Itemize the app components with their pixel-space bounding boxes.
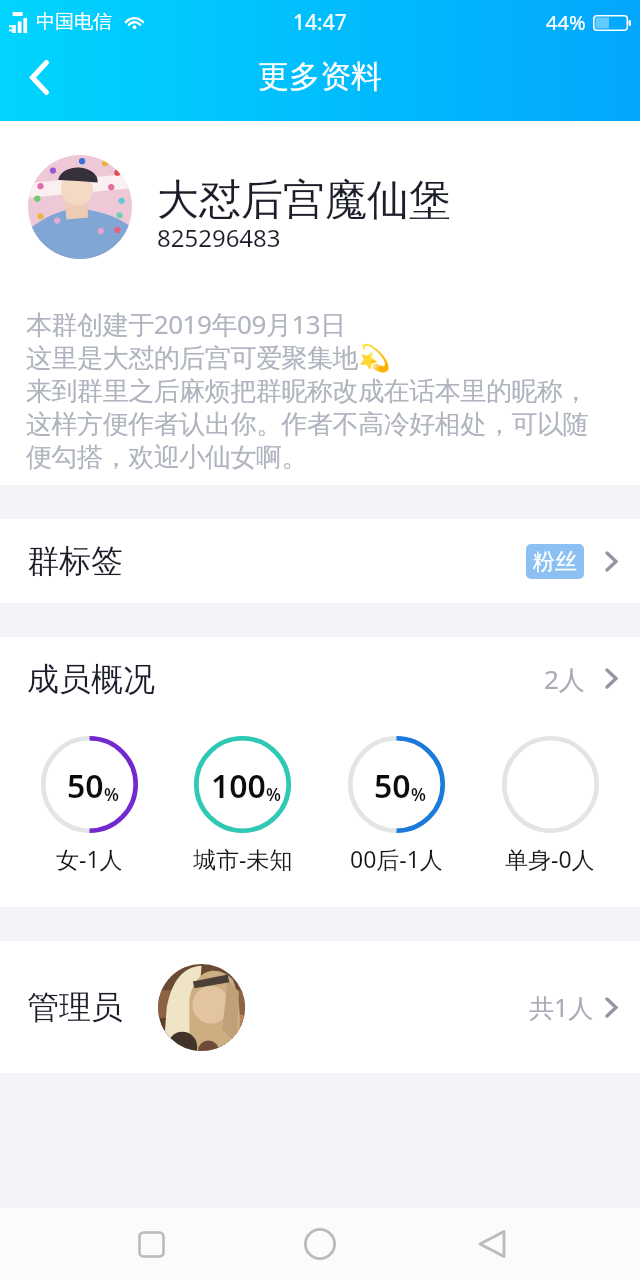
- staticText: 粉丝: [533, 548, 577, 576]
- staticText: %: [104, 783, 119, 806]
- button[interactable]: 群标签: [0, 519, 640, 603]
- staticText: 00后-1人: [350, 843, 443, 874]
- staticText: 女-1人: [56, 843, 123, 874]
- staticText: 825296483: [157, 221, 281, 254]
- staticText: 便勾搭，欢迎小仙女啊。: [26, 441, 308, 474]
- button[interactable]: 成员概况: [0, 637, 640, 720]
- staticText: 大怼后宫魔仙堡: [157, 174, 451, 227]
- staticText: 2人: [544, 661, 585, 697]
- staticText: 本群创建于2019年09月13日: [26, 306, 346, 342]
- staticText: 这里是大怼的后宫可爱聚集地💫: [26, 342, 391, 375]
- button[interactable]: Back: [0, 39, 78, 116]
- button[interactable]: 管理员: [0, 941, 640, 1073]
- staticText: 管理员: [27, 987, 123, 1027]
- staticText: 共1人: [529, 990, 594, 1024]
- button[interactable]: Recent apps: [107, 1208, 195, 1280]
- staticText: 这样方便作者认出你。作者不高冷好相处，可以随: [26, 408, 589, 441]
- staticText: 100: [211, 764, 266, 808]
- button[interactable]: Home: [276, 1208, 364, 1280]
- staticText: 50: [67, 764, 104, 808]
- staticText: 50: [374, 764, 411, 808]
- button[interactable]: Back: [448, 1208, 536, 1280]
- staticText: 城市-未知: [193, 843, 293, 874]
- staticText: %: [411, 783, 426, 806]
- staticText: 群标签: [27, 541, 123, 581]
- staticText: 来到群里之后麻烦把群昵称改成在话本里的昵称，: [26, 375, 589, 408]
- staticText: 中国电信: [36, 10, 112, 34]
- staticText: 更多资料: [258, 57, 382, 96]
- staticText: 14:47: [293, 8, 347, 37]
- staticText: %: [266, 783, 281, 806]
- staticText: 单身-0人: [505, 843, 595, 874]
- staticText: 成员概况: [27, 659, 155, 699]
- staticText: 44%: [546, 9, 586, 36]
